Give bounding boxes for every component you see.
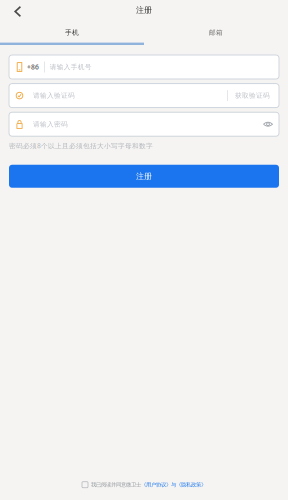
staticText: 密码必须8个以上且必须包括大小写字母和数字 [9,141,153,150]
button[interactable]: 我已阅读并同意微卫士 [0,481,288,500]
staticText: 《用户协议》与《隐私政策》 [141,481,206,488]
button[interactable]: 手机 [0,20,144,45]
staticText: 我已阅读并同意微卫士 [91,481,141,488]
button[interactable]: 获取验证码 [228,91,270,100]
button[interactable]: 返回 [0,0,32,20]
staticText: 获取验证码 [235,91,270,100]
staticText: 请输入密码 [33,120,68,128]
staticText: 注册 [136,171,152,181]
staticText: 手机 [65,28,79,37]
staticText: 邮箱 [209,28,223,37]
staticText: 请输入手机号 [50,63,92,71]
staticText: +86 [27,63,39,71]
button[interactable]: 邮箱 [144,20,288,45]
staticText: 注册 [136,5,152,15]
staticText: 请输入验证码 [33,91,75,100]
button[interactable]: 注册 [9,165,279,188]
button[interactable]: 显示密码 [263,120,273,129]
